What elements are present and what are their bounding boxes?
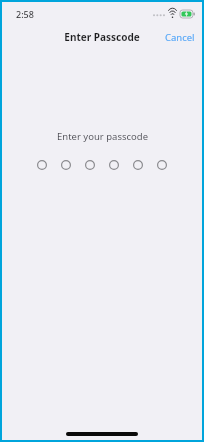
button[interactable]: Passcode digit 4 <box>109 160 119 170</box>
button[interactable]: Passcode digit 3 <box>85 160 95 170</box>
staticText: 2:58 <box>16 8 34 20</box>
staticText: Cancel <box>165 31 195 44</box>
staticText: Enter Passcode <box>64 30 140 44</box>
button[interactable]: Passcode digit 2 <box>61 160 71 170</box>
button[interactable]: Passcode digit 5 <box>133 160 143 170</box>
staticText: Enter your passcode <box>57 130 148 143</box>
button[interactable]: Passcode digit 1 <box>37 160 47 170</box>
button[interactable]: Cancel <box>156 27 204 48</box>
button[interactable]: Passcode digit 6 <box>157 160 167 170</box>
